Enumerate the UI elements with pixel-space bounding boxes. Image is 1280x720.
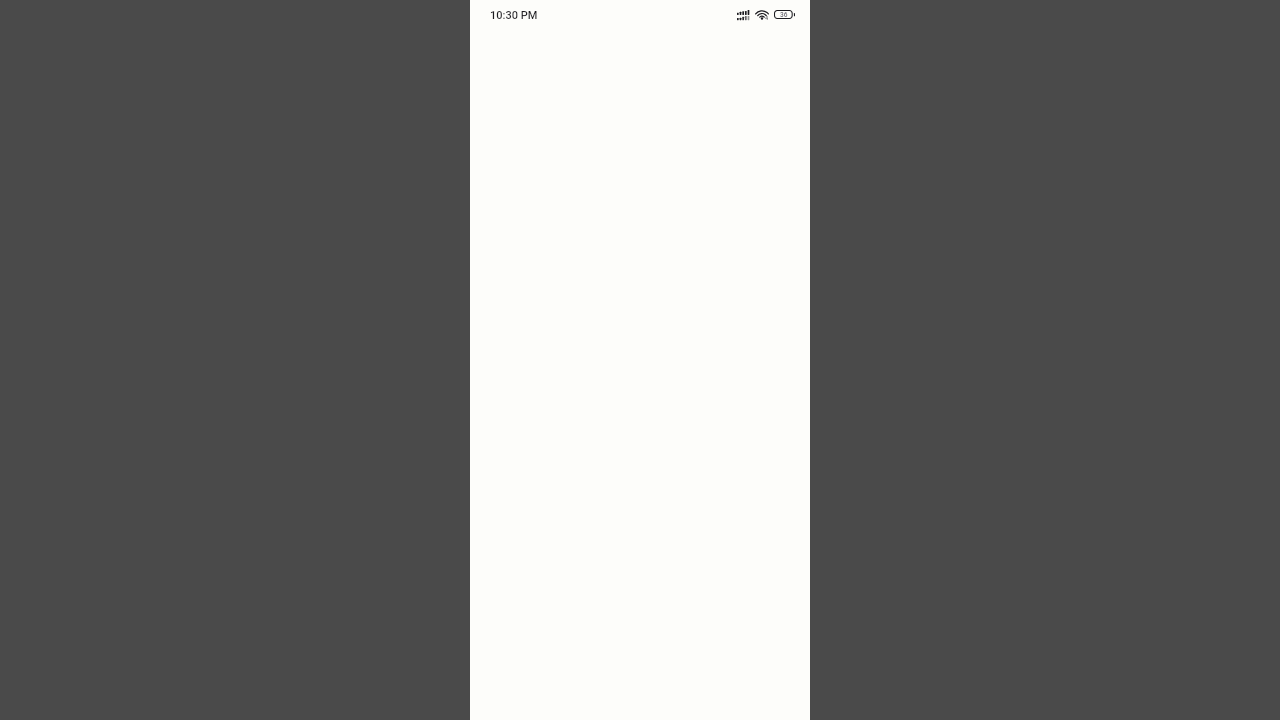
- other: Wi-Fi connected: [755, 10, 769, 19]
- other: Mobile signal strength: [737, 10, 750, 20]
- staticText: 10:30 PM: [490, 9, 538, 22]
- staticText: 36: [780, 11, 788, 19]
- staticText: 4: [765, 15, 769, 21]
- other: Battery 36 percent: [774, 10, 795, 19]
